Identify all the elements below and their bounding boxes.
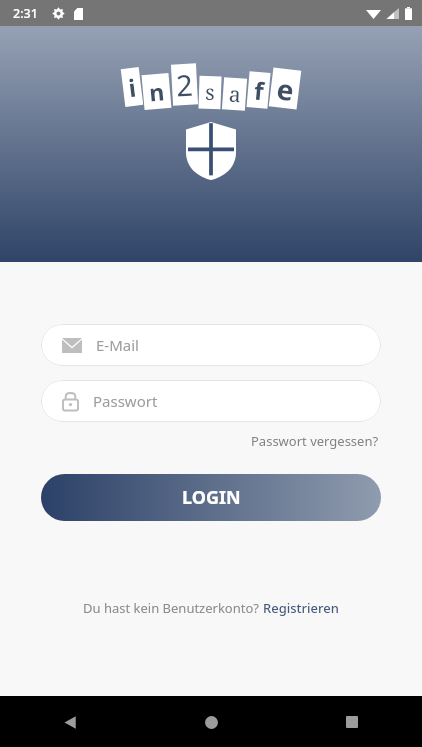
button[interactable]: Passwort vergessen? (249, 430, 381, 452)
button[interactable]: Recents (328, 698, 376, 746)
staticText: n (148, 75, 165, 108)
staticText: f (252, 74, 265, 107)
staticText: a (228, 80, 242, 109)
staticText: LOGIN (182, 485, 241, 510)
button[interactable]: Passwort (41, 380, 381, 422)
button[interactable]: Registrieren (263, 599, 339, 617)
button[interactable]: LOGIN (41, 474, 381, 521)
staticText: E-Mail (96, 335, 139, 355)
staticText: e (275, 69, 296, 109)
button[interactable]: E-Mail (41, 324, 381, 366)
staticText: Registrieren (263, 599, 339, 617)
staticText: Du hast kein Benutzerkonto? (83, 599, 263, 617)
button[interactable]: Home (187, 698, 235, 746)
button[interactable]: Back (46, 698, 94, 746)
staticText: 2:31 (13, 5, 38, 22)
staticText: Passwort vergessen? (251, 432, 379, 450)
staticText: 2 (175, 65, 194, 104)
staticText: Passwort (93, 391, 158, 411)
staticText: i (126, 71, 138, 104)
staticText: s (204, 78, 215, 107)
